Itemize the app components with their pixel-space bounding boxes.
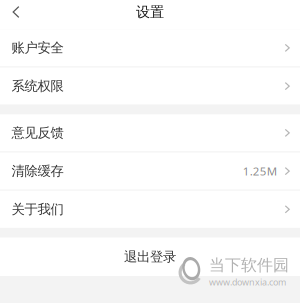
button[interactable]: 账户安全 bbox=[0, 29, 300, 66]
staticText: 设置 bbox=[136, 3, 164, 21]
button[interactable]: 系统权限 bbox=[0, 67, 300, 105]
staticText: 关于我们 bbox=[11, 201, 63, 218]
staticText: 当下软件园 bbox=[209, 255, 289, 275]
staticText: 退出登录 bbox=[124, 248, 176, 265]
button[interactable]: 关于我们 bbox=[0, 191, 300, 228]
button[interactable]: Back bbox=[0, 0, 32, 24]
staticText: 清除缓存 bbox=[11, 163, 63, 179]
staticText: 意见反馈 bbox=[11, 124, 63, 141]
button[interactable]: 意见反馈 bbox=[0, 114, 300, 151]
staticText: 系统权限 bbox=[11, 78, 63, 94]
staticText: 1.25M bbox=[243, 163, 277, 179]
staticText: 账户安全 bbox=[11, 39, 63, 56]
staticText: www.downxia.com bbox=[209, 276, 286, 288]
button[interactable]: 清除缓存 bbox=[0, 152, 300, 190]
button[interactable]: 退出登录 bbox=[0, 237, 300, 276]
